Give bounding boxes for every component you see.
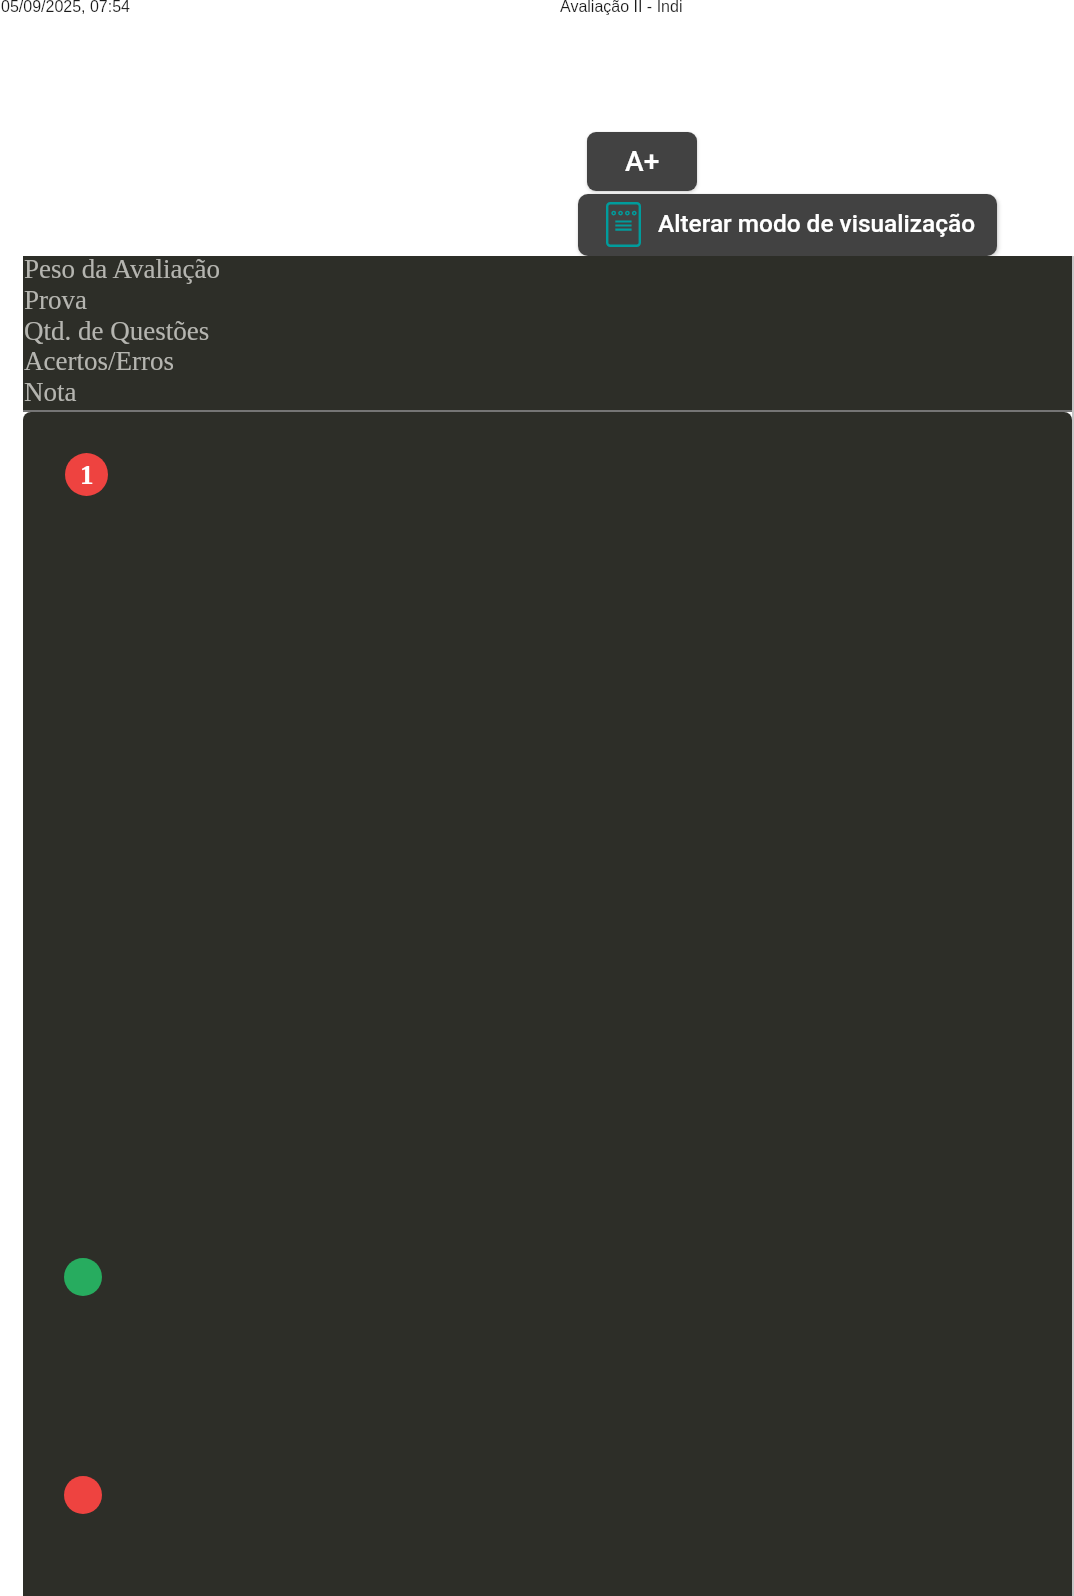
button[interactable]: Acertos/Erros	[23, 348, 1072, 379]
button[interactable]: 1	[65, 453, 108, 496]
button[interactable]: Prova	[23, 287, 1072, 318]
button[interactable]: Alterar modo de visualização	[578, 194, 997, 256]
other: Alterar modo de visualização	[606, 202, 641, 247]
staticText: A+	[625, 145, 660, 178]
button[interactable]: Qtd. de Questões	[23, 318, 1072, 349]
button[interactable]: Aumentar fonte	[587, 132, 697, 191]
button[interactable]: Nota	[23, 379, 1072, 410]
button[interactable]: Peso da Avaliação	[23, 256, 1072, 287]
staticText: Avaliação II - Indi	[560, 0, 683, 16]
staticText: Nota	[24, 377, 77, 407]
staticText: Alterar modo de visualização	[658, 209, 976, 238]
staticText: 05/09/2025, 07:54	[1, 0, 131, 16]
staticText: Qtd. de Questões	[24, 316, 210, 346]
button[interactable]: Resposta correta	[64, 1258, 102, 1296]
staticText: 1	[80, 460, 94, 490]
staticText: Prova	[24, 285, 87, 315]
staticText: Peso da Avaliação	[24, 254, 220, 284]
button[interactable]: Resposta incorreta	[64, 1476, 102, 1514]
staticText: Acertos/Erros	[24, 346, 174, 376]
